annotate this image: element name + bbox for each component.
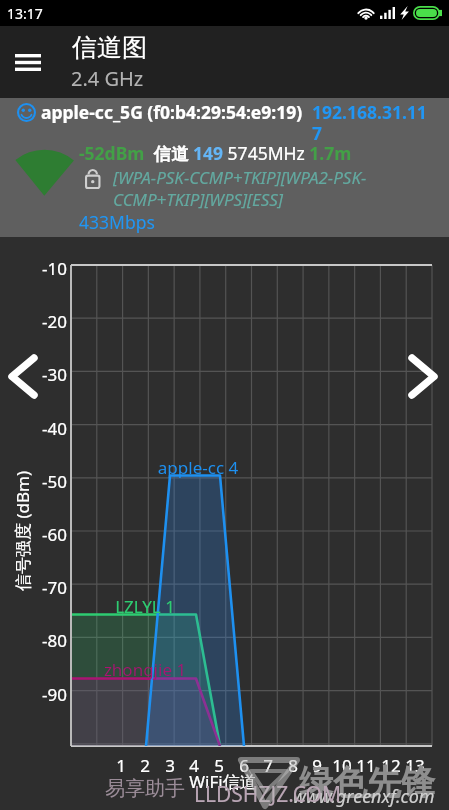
staticText: apple-cc_5G (f0:b4:29:54:e9:19) [41, 100, 303, 124]
staticText: -60 [22, 523, 67, 546]
staticText: -50 [22, 470, 67, 493]
staticText: 信号强度 (dBm) [11, 456, 34, 606]
staticText: 8 [278, 754, 308, 777]
staticText: WiFi信道 [168, 770, 278, 793]
staticText: 12 [376, 754, 406, 777]
staticText: [WPA-PSK-CCMP+TKIP][WPA2-PSK-CCMP+TKIP][… [113, 166, 371, 211]
staticText: 1 [106, 754, 136, 777]
staticText: LLDSHZJZ.COM [194, 780, 342, 809]
button[interactable]: Next band [400, 353, 446, 399]
staticText: 6 [229, 754, 259, 777]
staticText: LZLYL 1 [65, 595, 225, 618]
staticText: 13 [400, 754, 430, 777]
staticText: -70 [22, 576, 67, 599]
staticText: -80 [22, 629, 67, 652]
staticText: 7 [253, 754, 283, 777]
staticText: apple-cc 4 [118, 456, 278, 479]
staticText: 13:17 [7, 4, 43, 23]
staticText: www.greenxf.com [293, 784, 435, 809]
staticText: 2.4 GHz [71, 65, 144, 92]
staticText: -10 [22, 257, 67, 280]
staticText: 433Mbps [79, 210, 155, 234]
staticText: -40 [22, 417, 67, 440]
staticText: 易享助手 [105, 776, 185, 801]
staticText: 5 [204, 754, 234, 777]
staticText: zhongjie 1 [65, 658, 225, 681]
staticText: 信道图 [72, 32, 147, 63]
staticText: 192.168.31.117 [312, 100, 431, 145]
staticText: -52dBm 信道 149 5745MHz 1.7m [79, 141, 352, 165]
button[interactable]: apple-cc_5G (f0:b4:29:54:e9:19) [0, 98, 449, 237]
staticText: -20 [22, 310, 67, 333]
staticText: 3 [155, 754, 185, 777]
staticText: 4 [179, 754, 209, 777]
staticText: 11 [351, 754, 381, 777]
button[interactable]: Previous band [0, 353, 46, 399]
staticText: -30 [22, 363, 67, 386]
staticText: -90 [22, 683, 67, 706]
button[interactable]: Open navigation menu [7, 41, 49, 83]
staticText: 10 [327, 754, 357, 777]
staticText: 绿色先锋 [299, 761, 435, 804]
staticText: 9 [302, 754, 332, 777]
staticText: 2 [130, 754, 160, 777]
